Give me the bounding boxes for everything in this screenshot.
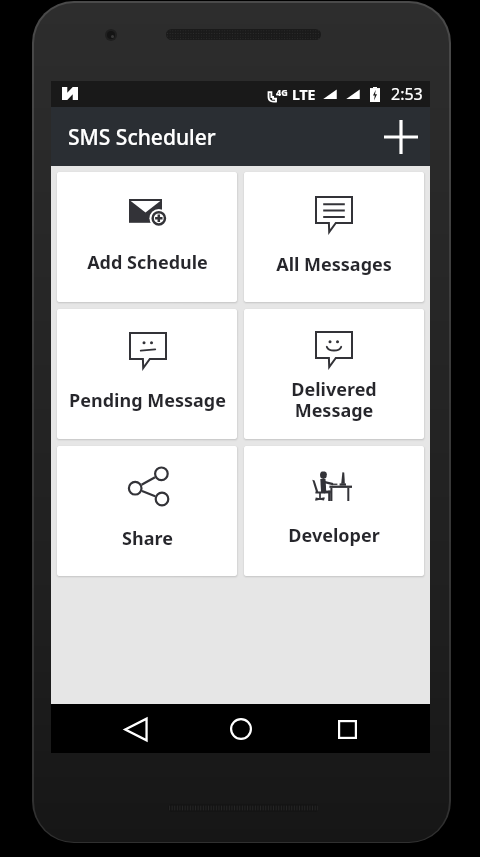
staticText: Developer	[288, 523, 380, 548]
button[interactable]: Add Schedule	[57, 172, 237, 302]
staticText: All Messages	[276, 252, 392, 277]
button[interactable]: Back	[110, 705, 158, 753]
staticText: 2:53	[391, 83, 423, 105]
button[interactable]: Home	[217, 705, 265, 753]
button[interactable]: Pending Message	[57, 309, 237, 439]
button[interactable]: All Messages	[244, 172, 424, 302]
button[interactable]: Add	[379, 115, 423, 159]
button[interactable]: Developer	[244, 446, 424, 576]
staticText: SMS Scheduler	[68, 123, 216, 152]
button[interactable]: Delivered Message	[244, 309, 424, 439]
staticText: 4G	[276, 86, 288, 98]
staticText: LTE	[292, 85, 316, 104]
staticText: Pending Message	[69, 388, 226, 413]
button[interactable]: Recents	[323, 705, 371, 753]
staticText: Share	[122, 526, 173, 551]
button[interactable]: Share	[57, 446, 237, 576]
staticText: Add Schedule	[87, 250, 208, 275]
staticText: Delivered Message	[291, 377, 377, 423]
